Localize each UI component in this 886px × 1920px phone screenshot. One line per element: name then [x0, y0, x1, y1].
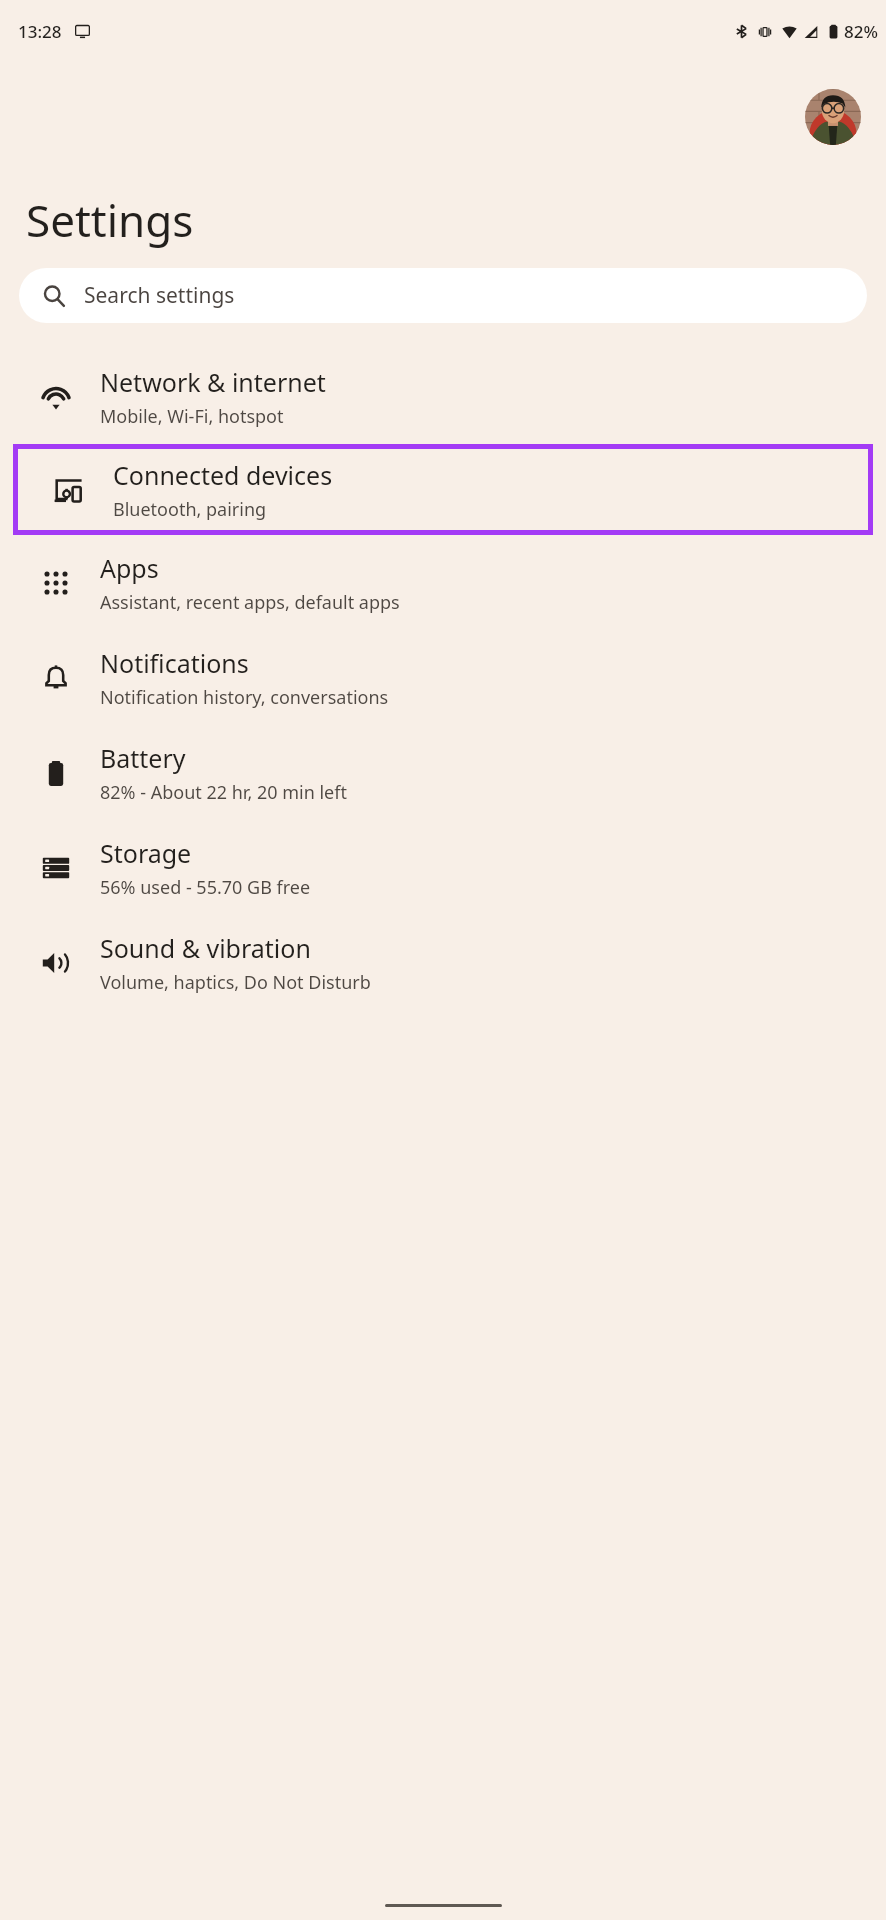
staticText: 82% - About 22 hr, 20 min left: [100, 780, 347, 805]
button[interactable]: Sound & vibration: [0, 915, 886, 1010]
staticText: Volume, haptics, Do Not Disturb: [100, 970, 371, 995]
staticText: Notification history, conversations: [100, 685, 389, 710]
staticText: 13:28: [18, 20, 62, 43]
button[interactable]: Connected devices: [18, 449, 868, 530]
button[interactable]: Battery: [0, 725, 886, 820]
staticText: Settings: [26, 190, 194, 250]
staticText: Sound & vibration: [100, 931, 311, 965]
staticText: Search settings: [84, 281, 235, 310]
staticText: 82%: [844, 20, 878, 43]
staticText: Connected devices: [113, 458, 333, 492]
staticText: Bluetooth, pairing: [113, 497, 267, 522]
staticText: Assistant, recent apps, default apps: [100, 590, 400, 615]
button[interactable]: Account: [805, 89, 861, 145]
button[interactable]: Storage: [0, 820, 886, 915]
staticText: Notifications: [100, 646, 249, 680]
staticText: 56% used - 55.70 GB free: [100, 875, 311, 900]
staticText: Network & internet: [100, 365, 326, 399]
staticText: Storage: [100, 836, 192, 870]
button[interactable]: Network & internet: [0, 349, 886, 444]
staticText: Mobile, Wi-Fi, hotspot: [100, 404, 284, 429]
button[interactable]: Search settings: [19, 268, 867, 323]
button[interactable]: Notifications: [0, 630, 886, 725]
staticText: Apps: [100, 551, 159, 585]
staticText: Battery: [100, 741, 186, 775]
button[interactable]: Apps: [0, 535, 886, 630]
